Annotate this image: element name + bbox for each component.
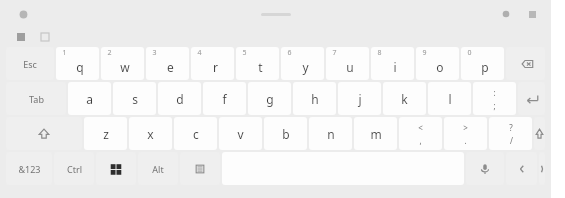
button[interactable]: h: [293, 82, 336, 115]
staticText: r: [213, 59, 218, 75]
button[interactable]: k: [383, 82, 426, 115]
button[interactable]: Dock keyboard: [499, 7, 513, 21]
staticText: t: [258, 59, 263, 75]
staticText: 8: [377, 48, 382, 58]
button[interactable]: Move right: [539, 152, 545, 185]
staticText: s: [132, 91, 138, 107]
staticText: i: [393, 59, 397, 75]
button[interactable]: l: [428, 82, 471, 115]
staticText: u: [346, 59, 354, 75]
staticText: <: [418, 122, 423, 133]
button[interactable]: 4: [191, 47, 234, 80]
button[interactable]: :: [473, 82, 516, 115]
button[interactable]: Enter: [518, 82, 545, 115]
button[interactable]: v: [219, 117, 262, 150]
button[interactable]: Backspace: [506, 47, 545, 80]
button[interactable]: 6: [281, 47, 324, 80]
button[interactable]: <: [399, 117, 442, 150]
button[interactable]: z: [84, 117, 127, 150]
staticText: o: [436, 59, 444, 75]
staticText: 3: [152, 48, 157, 58]
staticText: b: [282, 126, 290, 142]
button[interactable]: s: [113, 82, 156, 115]
button[interactable]: 2: [101, 47, 144, 80]
staticText: l: [448, 91, 452, 107]
staticText: :: [493, 87, 496, 98]
button[interactable]: g: [248, 82, 291, 115]
staticText: d: [176, 91, 184, 107]
button[interactable]: x: [129, 117, 172, 150]
staticText: 7: [332, 48, 337, 58]
staticText: m: [370, 126, 382, 142]
button[interactable]: f: [203, 82, 246, 115]
button[interactable]: d: [158, 82, 201, 115]
staticText: a: [86, 91, 93, 107]
staticText: w: [120, 59, 130, 75]
button[interactable]: b: [264, 117, 307, 150]
staticText: x: [147, 126, 154, 142]
staticText: .: [464, 135, 467, 146]
staticText: 1: [62, 48, 67, 58]
staticText: k: [401, 91, 408, 107]
button[interactable]: Alt: [138, 152, 178, 185]
button[interactable]: j: [338, 82, 381, 115]
button[interactable]: >: [444, 117, 487, 150]
button[interactable]: 7: [326, 47, 369, 80]
staticText: e: [167, 59, 174, 75]
staticText: ,: [419, 135, 422, 146]
staticText: ;: [493, 100, 496, 111]
staticText: f: [222, 91, 227, 107]
staticText: q: [76, 59, 84, 75]
staticText: j: [358, 91, 362, 107]
staticText: Esc: [23, 58, 37, 70]
button[interactable]: 3: [146, 47, 189, 80]
staticText: ?: [509, 122, 513, 133]
button[interactable]: m: [354, 117, 397, 150]
staticText: h: [311, 91, 319, 107]
staticText: >: [463, 122, 468, 133]
button[interactable]: Windows key: [96, 152, 136, 185]
staticText: 5: [242, 48, 247, 58]
button[interactable]: Clipboard: [38, 30, 52, 44]
staticText: 4: [197, 48, 202, 58]
button[interactable]: a: [68, 82, 111, 115]
button[interactable]: ?: [489, 117, 532, 150]
staticText: 0: [467, 48, 472, 58]
button[interactable]: Tab: [6, 82, 66, 115]
staticText: 6: [287, 48, 292, 58]
button[interactable]: 0: [461, 47, 504, 80]
button[interactable]: &123: [6, 152, 52, 185]
staticText: c: [193, 126, 199, 142]
button[interactable]: Ctrl: [54, 152, 94, 185]
button[interactable]: Move left: [506, 152, 537, 185]
button[interactable]: 1: [56, 47, 99, 80]
staticText: /: [510, 135, 513, 146]
staticText: &123: [18, 163, 41, 175]
staticText: g: [266, 91, 274, 107]
button[interactable]: n: [309, 117, 352, 150]
button[interactable]: Menu: [180, 152, 220, 185]
button[interactable]: 5: [236, 47, 279, 80]
staticText: 2: [107, 48, 112, 58]
staticText: n: [327, 126, 335, 142]
staticText: v: [237, 126, 244, 142]
staticText: y: [302, 59, 309, 75]
staticText: z: [103, 126, 109, 142]
button[interactable]: Esc: [6, 47, 54, 80]
button[interactable]: Shift: [534, 117, 545, 150]
button[interactable]: c: [174, 117, 217, 150]
staticText: p: [481, 59, 489, 75]
button[interactable]: Shift: [6, 117, 82, 150]
staticText: Tab: [29, 93, 44, 105]
button[interactable]: 9: [416, 47, 459, 80]
button[interactable]: Emoji: [14, 30, 28, 44]
staticText: Ctrl: [67, 163, 82, 175]
staticText: Alt: [152, 163, 164, 175]
button[interactable]: Keyboard settings: [16, 7, 30, 21]
button[interactable]: 8: [371, 47, 414, 80]
button[interactable]: Microphone: [466, 152, 504, 185]
button[interactable]: Close keyboard: [525, 7, 539, 21]
staticText: 9: [422, 48, 427, 58]
